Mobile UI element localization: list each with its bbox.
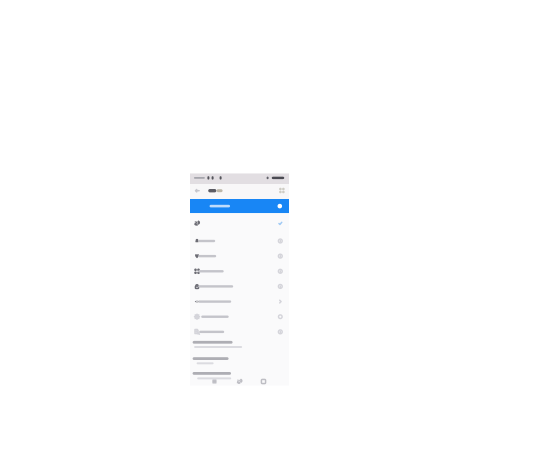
button[interactable]: Apps — [190, 173, 289, 385]
button[interactable] — [190, 309, 289, 324]
button[interactable] — [190, 233, 289, 249]
button[interactable] — [190, 199, 289, 213]
button[interactable]: Contacts — [190, 173, 289, 385]
button[interactable]: Settings — [190, 173, 289, 385]
button[interactable] — [190, 248, 289, 264]
button[interactable] — [190, 324, 289, 339]
button[interactable] — [190, 264, 289, 279]
button[interactable] — [190, 294, 289, 309]
button[interactable]: Chats — [190, 173, 289, 385]
button[interactable] — [190, 279, 289, 294]
button[interactable] — [190, 213, 289, 233]
button[interactable]: Back — [190, 173, 289, 385]
